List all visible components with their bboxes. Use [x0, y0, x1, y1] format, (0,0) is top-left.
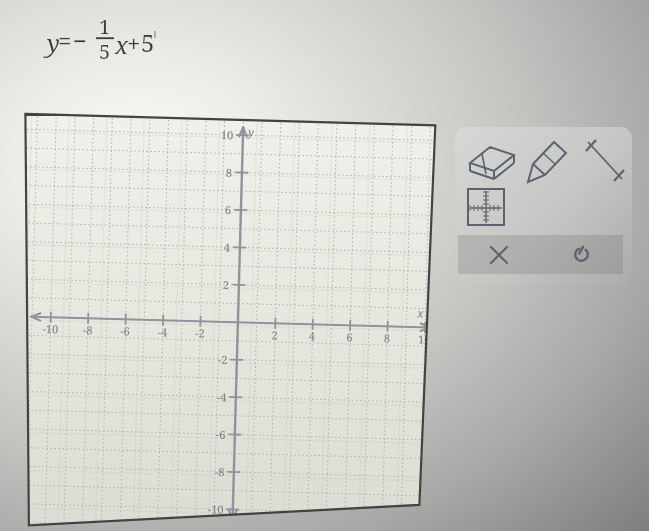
button[interactable]: Eraser — [468, 141, 506, 171]
button[interactable]: Undo — [540, 235, 623, 274]
button[interactable]: Line — [585, 139, 615, 173]
button[interactable]: Graph — [468, 189, 498, 219]
button[interactable]: Clear — [458, 235, 540, 274]
button[interactable]: Pencil — [526, 138, 562, 172]
